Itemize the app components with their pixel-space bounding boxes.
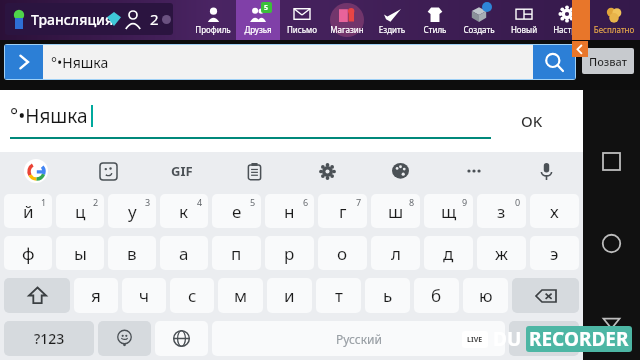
button[interactable]: ф — [4, 236, 52, 270]
button[interactable]: к — [160, 194, 208, 228]
button[interactable]: Стиль — [414, 0, 456, 40]
button[interactable]: Settings — [291, 152, 364, 190]
button[interactable]: 5 — [236, 0, 280, 40]
staticText: д — [443, 242, 454, 265]
button[interactable]: а — [160, 236, 208, 270]
staticText: 0 — [515, 196, 521, 208]
button[interactable]: е — [212, 194, 261, 228]
staticText: э — [550, 242, 559, 265]
button[interactable]: Home — [583, 200, 640, 286]
button[interactable]: с — [170, 278, 214, 313]
staticText: 8 — [409, 196, 415, 208]
button[interactable]: Письмо — [280, 0, 324, 40]
staticText: Настро — [546, 24, 588, 35]
staticText: °•Няшка — [51, 53, 109, 72]
staticText: 9 — [462, 196, 468, 208]
button[interactable]: н — [265, 194, 314, 228]
button[interactable]: л — [371, 236, 420, 270]
button[interactable]: т — [316, 278, 361, 313]
staticText: 5 — [264, 3, 269, 13]
staticText: а — [179, 242, 189, 265]
staticText: 2 — [150, 9, 159, 29]
staticText: ф — [22, 242, 35, 265]
staticText: я — [91, 284, 101, 307]
staticText: 5 — [250, 196, 256, 208]
button[interactable]: ы — [56, 236, 104, 270]
button[interactable]: Магазин — [324, 0, 370, 40]
staticText: Магазин — [324, 24, 370, 35]
button[interactable]: у — [108, 194, 156, 228]
staticText: л — [391, 242, 401, 265]
button[interactable]: г — [318, 194, 367, 228]
button[interactable]: ю — [463, 278, 508, 313]
staticText: Новый — [502, 24, 546, 35]
button[interactable]: Enter — [509, 321, 579, 356]
staticText: и — [284, 284, 295, 307]
button[interactable]: м — [218, 278, 263, 313]
button[interactable]: Emoji — [98, 321, 151, 356]
button[interactable]: п — [212, 236, 261, 270]
button[interactable]: Recents — [583, 122, 640, 200]
staticText: б — [431, 284, 442, 307]
button[interactable]: щ — [424, 194, 473, 228]
button[interactable]: Back — [583, 286, 640, 358]
button[interactable]: Search — [533, 45, 575, 79]
staticText: к — [179, 200, 189, 223]
staticText: о — [337, 242, 348, 265]
button[interactable]: Бесплатно — [588, 0, 640, 40]
button[interactable]: Новый — [502, 0, 546, 40]
button[interactable]: о — [318, 236, 367, 270]
button[interactable]: Stickers — [72, 152, 145, 190]
button[interactable]: Трансляция — [5, 3, 173, 35]
button[interactable]: Ездить — [370, 0, 414, 40]
button[interactable]: э — [530, 236, 579, 270]
button[interactable]: я — [74, 278, 118, 313]
button[interactable]: й — [4, 194, 52, 228]
staticText: Позват — [589, 54, 627, 69]
staticText: GIF — [171, 162, 193, 180]
staticText: Письмо — [280, 24, 324, 35]
button[interactable]: OK — [521, 90, 543, 152]
button[interactable]: б — [414, 278, 459, 313]
button[interactable]: Русский — [212, 321, 505, 356]
button[interactable]: р — [265, 236, 314, 270]
button[interactable]: Позват — [582, 48, 634, 74]
button[interactable]: Настро — [546, 0, 588, 40]
button[interactable]: ц — [56, 194, 104, 228]
staticText: г — [339, 200, 347, 223]
button[interactable]: Backspace — [512, 278, 579, 313]
button[interactable]: д — [424, 236, 473, 270]
button[interactable]: ч — [122, 278, 166, 313]
staticText: ц — [75, 200, 86, 223]
staticText: щ — [441, 200, 457, 223]
staticText: ы — [74, 242, 87, 265]
staticText: ю — [479, 284, 493, 307]
button[interactable]: Clipboard — [218, 152, 291, 190]
button[interactable]: х — [530, 194, 579, 228]
button[interactable]: и — [267, 278, 312, 313]
button[interactable]: ь — [365, 278, 410, 313]
button[interactable]: Expand — [5, 45, 43, 79]
staticText: OK — [521, 111, 543, 131]
staticText: у — [128, 200, 137, 223]
button[interactable]: Создать — [456, 0, 502, 40]
button[interactable]: More — [437, 152, 510, 190]
staticText: Бесплатно — [588, 24, 640, 35]
button[interactable]: Профиль — [190, 0, 236, 40]
button[interactable]: ш — [371, 194, 420, 228]
button[interactable]: ?123 — [4, 321, 94, 356]
button[interactable]: Shift — [4, 278, 70, 313]
button[interactable]: Theme — [364, 152, 437, 190]
staticText: н — [284, 200, 295, 223]
staticText: 2 — [93, 196, 99, 208]
staticText: Профиль — [190, 24, 236, 35]
button[interactable]: Voice — [510, 152, 583, 190]
staticText: DU — [493, 326, 522, 352]
button[interactable]: з — [477, 194, 526, 228]
button[interactable]: ж — [477, 236, 526, 270]
staticText: LIVE — [467, 335, 483, 345]
button[interactable]: Language — [155, 321, 208, 356]
staticText: т — [335, 284, 343, 307]
button[interactable]: в — [108, 236, 156, 270]
staticText: 4 — [197, 196, 203, 208]
